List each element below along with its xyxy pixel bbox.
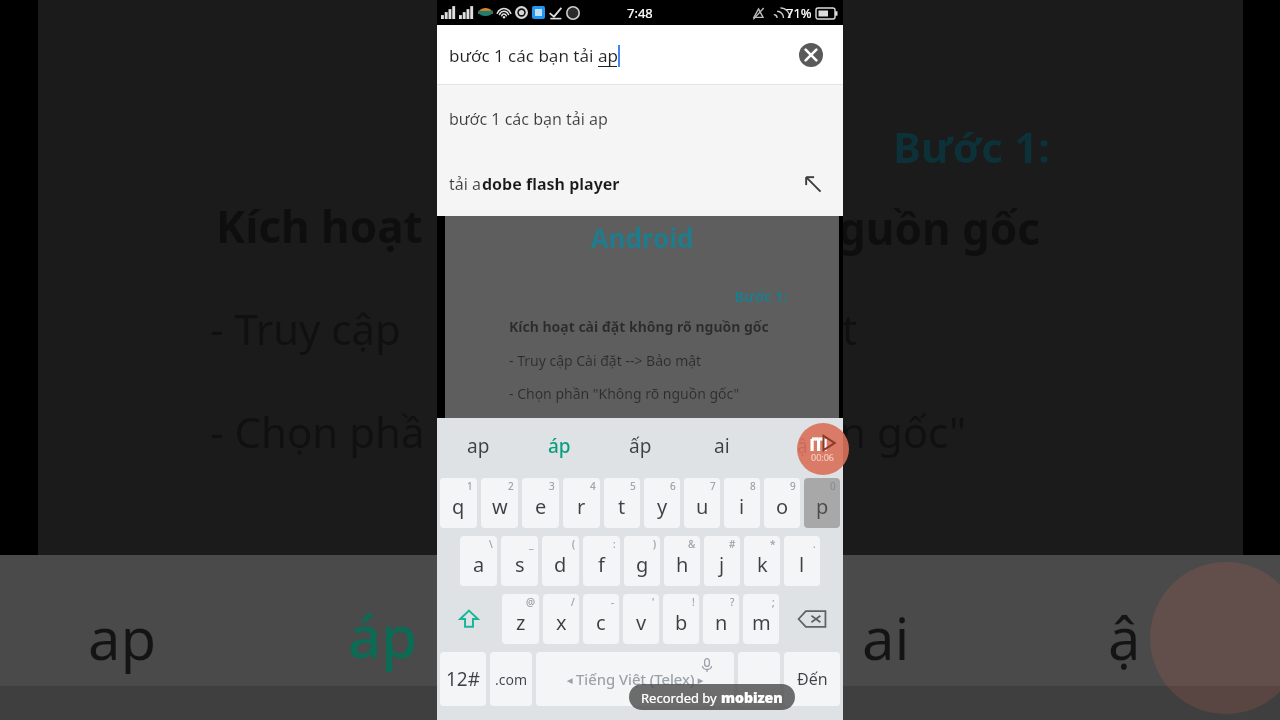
button[interactable]: ap bbox=[437, 418, 519, 474]
button[interactable]: v bbox=[623, 594, 659, 644]
staticText: . bbox=[813, 537, 816, 551]
button[interactable]: bước 1 các bạn tải ap bbox=[437, 85, 843, 152]
staticText: s bbox=[515, 551, 525, 578]
staticText: q bbox=[452, 493, 465, 520]
button[interactable]: f bbox=[583, 536, 620, 586]
staticText: u bbox=[696, 493, 709, 520]
staticText: Đến bbox=[797, 668, 828, 690]
button[interactable]: e bbox=[522, 478, 559, 528]
button[interactable]: ai bbox=[681, 418, 762, 474]
staticText: - Truy cập bbox=[210, 300, 401, 357]
button[interactable]: j bbox=[704, 536, 740, 586]
staticText: t bbox=[842, 300, 858, 357]
staticText: .com bbox=[495, 670, 528, 689]
staticText: ap bbox=[467, 433, 490, 459]
button[interactable]: n bbox=[703, 594, 739, 644]
button[interactable]: o bbox=[764, 478, 800, 528]
staticText: 71% bbox=[786, 4, 812, 22]
button[interactable]: w bbox=[481, 478, 518, 528]
staticText: ấp bbox=[629, 433, 652, 459]
button[interactable]: ấp bbox=[600, 418, 681, 474]
staticText: ap bbox=[598, 44, 618, 67]
staticText: d bbox=[554, 551, 567, 578]
button[interactable]: h bbox=[664, 536, 700, 586]
button[interactable]: Clear search bbox=[791, 35, 831, 75]
staticText: tải a bbox=[449, 173, 482, 195]
button[interactable]: ◂ bbox=[536, 652, 734, 706]
staticText: ) bbox=[653, 537, 656, 551]
staticText: ◂ bbox=[567, 672, 576, 687]
staticText: - Truy cập Cài đặt --> Bảo mật bbox=[509, 351, 702, 370]
staticText: m bbox=[752, 609, 771, 636]
button[interactable]: .com bbox=[490, 652, 532, 706]
staticText: 12# bbox=[446, 666, 481, 692]
staticText: - Chọn phần "Không rõ nguồn gốc" bbox=[509, 384, 740, 403]
staticText: i bbox=[739, 493, 745, 520]
button[interactable]: Shift bbox=[440, 594, 498, 644]
button[interactable]: t bbox=[604, 478, 640, 528]
button[interactable]: ậ bbox=[762, 418, 843, 474]
staticText: n bbox=[715, 609, 728, 636]
staticText: ( bbox=[572, 537, 575, 551]
staticText: r bbox=[577, 493, 586, 520]
button[interactable]: Đến bbox=[784, 652, 840, 706]
button[interactable]: Insert suggestion bbox=[799, 170, 827, 198]
button[interactable]: áp bbox=[519, 418, 600, 474]
staticText: @ bbox=[526, 595, 535, 609]
staticText: 2 bbox=[508, 479, 514, 493]
button[interactable]: Mobizen recorder bbox=[797, 423, 849, 475]
staticText: o bbox=[776, 493, 789, 520]
button[interactable]: s bbox=[501, 536, 538, 586]
staticText: guồn gốc bbox=[838, 198, 1040, 258]
staticText: áp bbox=[548, 433, 571, 459]
button[interactable]: k bbox=[744, 536, 780, 586]
staticText: / bbox=[571, 595, 575, 609]
button[interactable]: c bbox=[583, 594, 619, 644]
staticText: x bbox=[556, 609, 567, 636]
staticText: g bbox=[636, 551, 649, 578]
button[interactable]: l bbox=[784, 536, 820, 586]
staticText: Bước 1: bbox=[893, 118, 1050, 175]
staticText: ? bbox=[730, 595, 735, 609]
button[interactable]: u bbox=[684, 478, 720, 528]
staticText: ai bbox=[714, 433, 730, 459]
staticText: Tiếng Việt (Telex) bbox=[576, 669, 695, 689]
staticText: ▸ bbox=[695, 672, 704, 687]
staticText: ! bbox=[692, 595, 695, 609]
button[interactable]: i bbox=[724, 478, 760, 528]
staticText: bước 1 các bạn tải ap bbox=[449, 108, 608, 130]
staticText: áp bbox=[348, 596, 418, 675]
button[interactable]: x bbox=[543, 594, 579, 644]
staticText: b bbox=[675, 609, 688, 636]
staticText: Kích hoạt bbox=[216, 196, 423, 256]
staticText: bước 1 các bạn tải bbox=[449, 44, 598, 67]
staticText: 7:48 bbox=[627, 4, 653, 22]
staticText: ; bbox=[772, 595, 775, 609]
button[interactable]: g bbox=[624, 536, 660, 586]
button[interactable]: Backspace bbox=[783, 594, 840, 644]
staticText: 5 bbox=[630, 479, 636, 493]
button[interactable]: b bbox=[663, 594, 699, 644]
button[interactable] bbox=[738, 652, 780, 706]
button[interactable]: a bbox=[460, 536, 497, 586]
button[interactable]: tải a bbox=[437, 152, 843, 216]
staticText: 0 bbox=[830, 479, 836, 493]
button[interactable]: y bbox=[644, 478, 680, 528]
button[interactable]: p bbox=[804, 478, 840, 528]
button[interactable]: d bbox=[542, 536, 579, 586]
button[interactable]: m bbox=[743, 594, 779, 644]
staticText: ai bbox=[862, 598, 910, 677]
staticText: & bbox=[688, 537, 696, 551]
staticText: 1 bbox=[467, 479, 473, 493]
button[interactable]: 12# bbox=[440, 652, 486, 706]
staticText: z bbox=[516, 609, 526, 636]
staticText: - Chọn phầ bbox=[210, 403, 425, 460]
staticText: t bbox=[618, 493, 626, 520]
button[interactable]: r bbox=[563, 478, 600, 528]
staticText: ap bbox=[88, 598, 157, 677]
button[interactable]: q bbox=[440, 478, 477, 528]
staticText: Recorded by bbox=[641, 689, 721, 707]
button[interactable]: z bbox=[502, 594, 539, 644]
staticText: 8 bbox=[750, 479, 756, 493]
button[interactable]: bước 1 các bạn tải bbox=[437, 25, 843, 85]
